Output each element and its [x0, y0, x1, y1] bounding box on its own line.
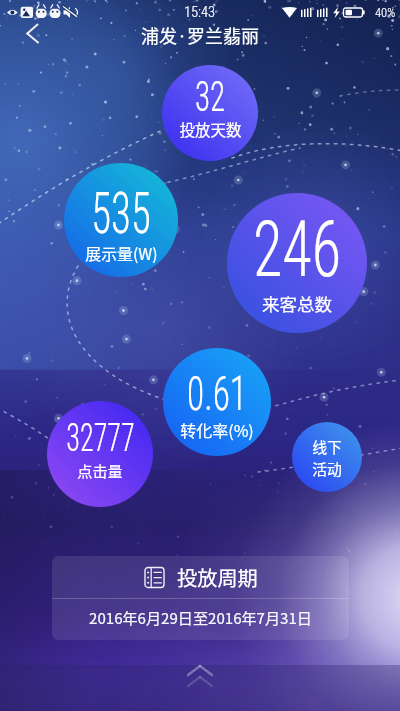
button[interactable]: 32 [162, 65, 258, 161]
staticText: 2016年6月29日至2016年7月31日 [89, 606, 312, 628]
button[interactable]: 线下 [292, 422, 362, 492]
button[interactable]: 32777 [47, 401, 153, 507]
button[interactable]: 0.61 [163, 348, 271, 456]
button[interactable]: 535 [64, 163, 178, 277]
staticText: 40% [375, 5, 396, 20]
staticText: 246 [253, 204, 341, 295]
staticText: 15:43 [184, 4, 216, 21]
staticText: 展示量(W) [85, 242, 158, 265]
staticText: 来客总数 [262, 291, 332, 316]
button[interactable]: 246 [227, 193, 367, 333]
staticText: 0.61 [187, 365, 247, 421]
staticText: 32 [195, 71, 225, 121]
button[interactable]: 投放周期 [52, 556, 349, 640]
staticText: 浦发·罗兰翡丽 [141, 22, 260, 48]
staticText: 活动 [312, 458, 342, 479]
button[interactable]: Back [12, 16, 50, 54]
staticText: 转化率(%) [180, 418, 254, 441]
button[interactable]: Expand [178, 660, 222, 694]
staticText: 投放天数 [179, 118, 242, 140]
staticText: 535 [91, 180, 151, 247]
staticText: 32777 [66, 416, 135, 461]
staticText: 点击量 [77, 459, 123, 481]
staticText: 投放周期 [177, 563, 258, 592]
staticText: 线下 [312, 436, 342, 457]
